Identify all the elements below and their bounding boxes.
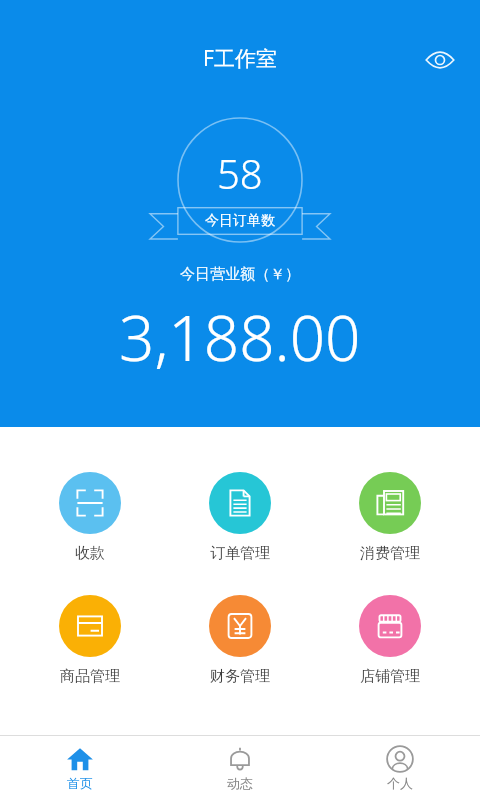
staticText: 财务管理 [210, 667, 270, 686]
button[interactable]: 消费管理 [330, 470, 450, 565]
staticText: 店铺管理 [360, 667, 420, 686]
staticText: F工作室 [203, 44, 277, 73]
button[interactable]: 个人 [320, 736, 480, 800]
staticText: 动态 [227, 775, 253, 791]
button[interactable]: 店铺管理 [330, 593, 450, 688]
staticText: 个人 [387, 775, 413, 791]
staticText: 首页 [67, 775, 93, 791]
staticText: 58 [217, 146, 263, 200]
button[interactable]: 商品管理 [30, 593, 150, 688]
button[interactable]: 财务管理 [180, 593, 300, 688]
staticText: 订单管理 [210, 544, 270, 563]
staticText: 今日订单数 [205, 212, 275, 230]
staticText: 今日营业额（￥） [180, 265, 300, 284]
button[interactable]: 订单管理 [180, 470, 300, 565]
button[interactable]: 收款 [30, 470, 150, 565]
staticText: 3,188.00 [119, 295, 361, 379]
button[interactable]: Toggle visibility [422, 42, 458, 78]
button[interactable]: 首页 [0, 736, 160, 800]
staticText: 消费管理 [360, 544, 420, 563]
staticText: 收款 [75, 544, 105, 563]
button[interactable]: 动态 [160, 736, 320, 800]
staticText: 商品管理 [60, 667, 120, 686]
